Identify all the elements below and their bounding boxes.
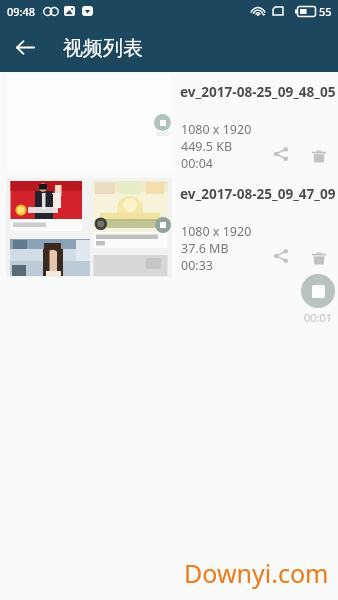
staticText: 09:48 — [7, 4, 36, 19]
staticText: 1080 x 1920 — [181, 223, 252, 240]
button[interactable]: Delete — [308, 245, 330, 267]
button[interactable]: 00:02 — [0, 72, 338, 174]
staticText: 00:01 — [304, 310, 333, 325]
staticText: 449.5 KB — [181, 138, 233, 155]
staticText: 视频列表 — [63, 36, 143, 61]
staticText: 00:33 — [181, 257, 213, 274]
staticText: 1080 x 1920 — [181, 121, 252, 138]
staticText: 00:04 — [181, 155, 213, 172]
staticText: 00:02 — [153, 131, 172, 138]
staticText: Downyi.com — [184, 556, 329, 590]
button[interactable]: ev_2017-08-25_09_47_09 — [0, 174, 338, 276]
staticText: 55 — [319, 4, 332, 19]
button[interactable]: Stop recording — [301, 274, 335, 308]
button[interactable]: Delete — [308, 143, 330, 165]
button[interactable]: Back — [0, 22, 50, 72]
button[interactable]: Share — [270, 143, 292, 165]
staticText: ev_2017-08-25_09_48_05 — [180, 82, 336, 101]
button[interactable]: Share — [270, 245, 292, 267]
staticText: ev_2017-08-25_09_47_09 — [180, 184, 336, 203]
staticText: 37.6 MB — [181, 240, 229, 257]
